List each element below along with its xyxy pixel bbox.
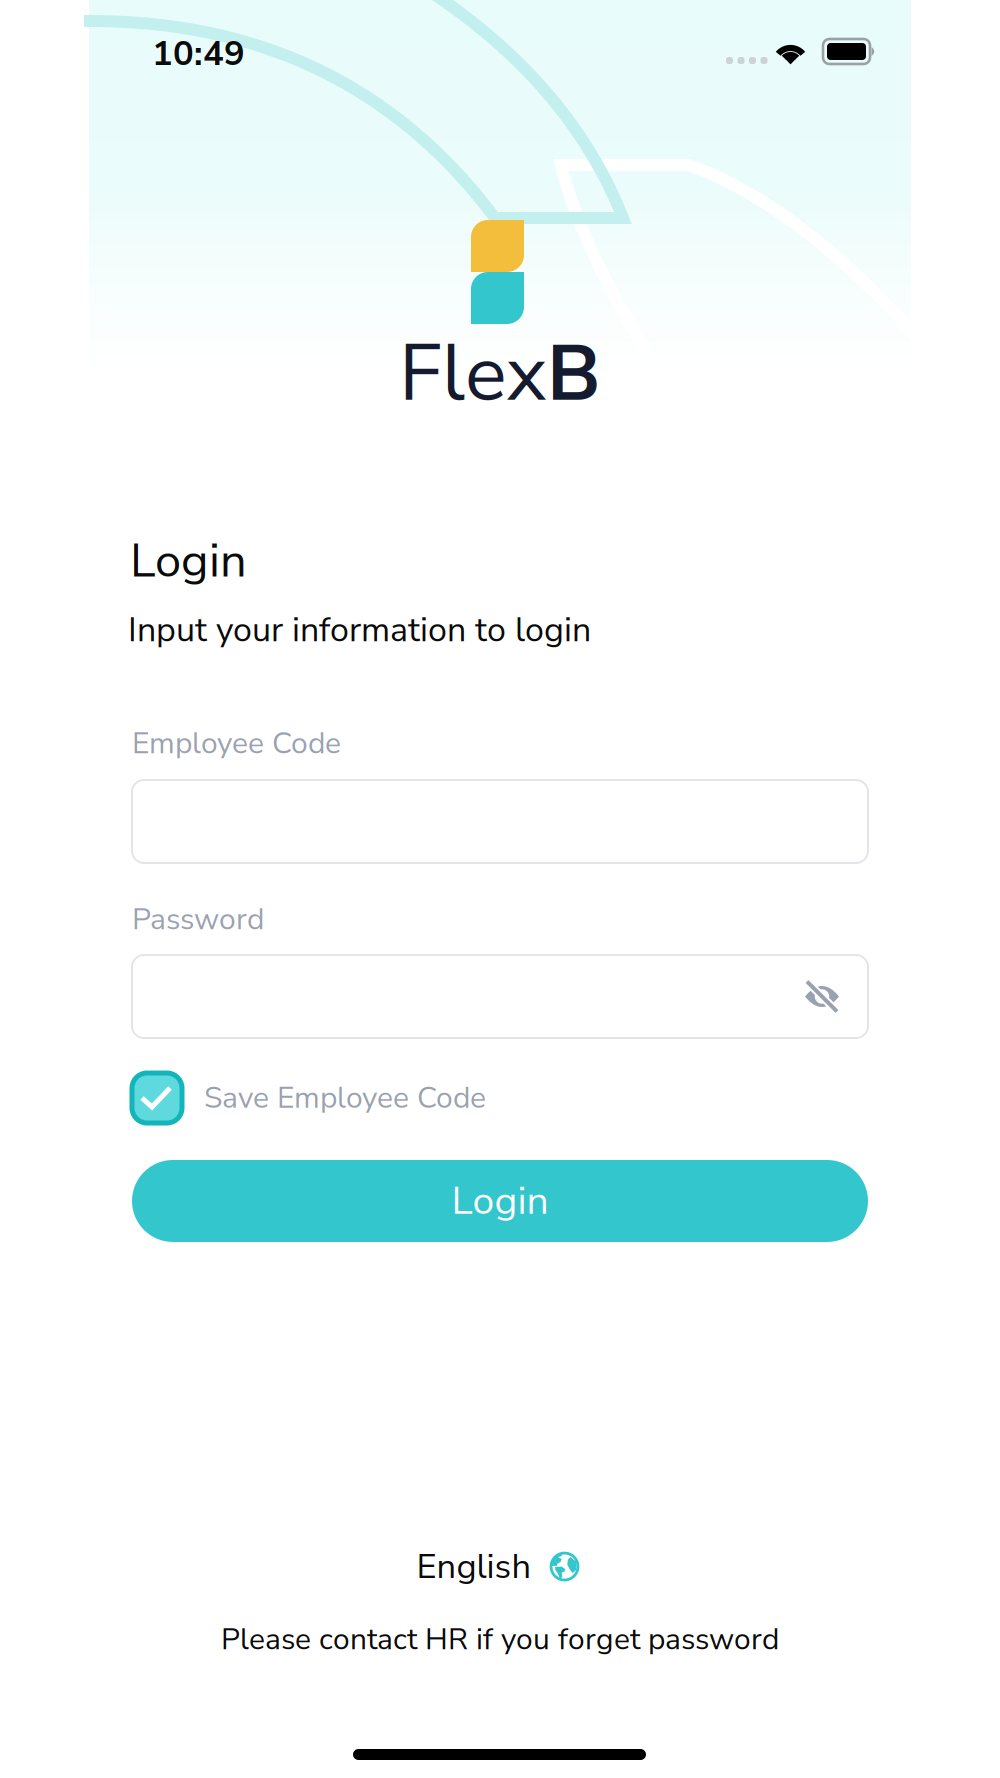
staticText: Please contact HR if you forget password (221, 1619, 779, 1660)
staticText: Login (130, 529, 247, 593)
staticText: Employee Code (132, 723, 341, 764)
staticText: B (547, 321, 601, 427)
staticText: English (416, 1543, 531, 1590)
button[interactable]: Show password (782, 955, 862, 1038)
button[interactable]: Login (132, 1160, 868, 1242)
staticText: Save Employee Code (204, 1077, 486, 1118)
staticText: 10:49 (152, 30, 245, 77)
staticText: Login (451, 1174, 548, 1228)
button[interactable]: Save Employee Code (132, 1073, 486, 1123)
staticText: Flex (399, 321, 547, 427)
staticText: Input your information to login (128, 607, 591, 653)
button[interactable]: English (416, 1543, 579, 1590)
staticText: Password (132, 899, 264, 940)
